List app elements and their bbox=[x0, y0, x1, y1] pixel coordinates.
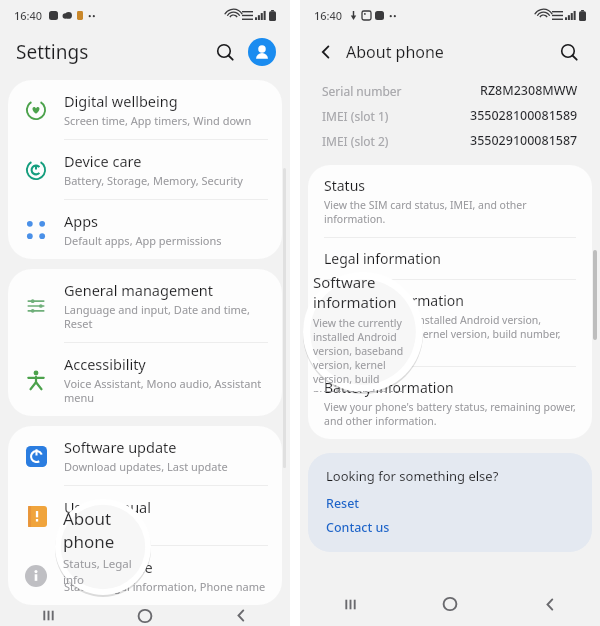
staticText: Serial number bbox=[322, 83, 402, 99]
button[interactable]: Reset bbox=[326, 495, 360, 512]
button[interactable]: Digital wellbeing bbox=[8, 80, 282, 139]
staticText: Screen time, App timers, Wind down bbox=[64, 113, 252, 128]
staticText: View the SIM card status, IMEI, and othe… bbox=[324, 198, 578, 226]
button[interactable]: About phone bbox=[8, 546, 282, 605]
staticText: About phone bbox=[64, 557, 153, 577]
staticText: Software information bbox=[313, 272, 413, 312]
button[interactable]: General management bbox=[8, 269, 282, 342]
staticText: Accessibility bbox=[64, 354, 146, 374]
staticText: Contact us bbox=[326, 519, 390, 536]
other: Search bbox=[216, 43, 235, 62]
button[interactable]: Recents bbox=[0, 605, 96, 626]
button[interactable]: Accessibility bbox=[8, 343, 282, 416]
staticText: View the currently installed Android ver… bbox=[313, 316, 413, 392]
button[interactable]: Home bbox=[96, 605, 193, 626]
button[interactable]: Search bbox=[208, 35, 242, 69]
staticText: Reset bbox=[326, 495, 360, 512]
staticText: Status, Legal info bbox=[63, 556, 143, 588]
button[interactable]: Battery information bbox=[308, 367, 592, 439]
staticText: General management bbox=[64, 280, 214, 300]
staticText: 355029100081587 bbox=[470, 132, 578, 149]
staticText: Voice Assistant, Mono audio, Assistant m… bbox=[64, 376, 268, 405]
staticText: Device care bbox=[64, 151, 142, 171]
staticText: Language and input, Date and time, Reset bbox=[64, 302, 268, 331]
button[interactable]: Home bbox=[400, 582, 500, 626]
other: Search bbox=[560, 43, 579, 62]
button[interactable]: Software information bbox=[308, 280, 592, 366]
staticText: Digital wellbeing bbox=[64, 91, 178, 111]
staticText: Software update bbox=[64, 437, 177, 457]
staticText: User manual bbox=[64, 519, 130, 534]
button[interactable]: Back bbox=[193, 605, 290, 626]
button[interactable]: Status bbox=[308, 165, 592, 237]
button[interactable]: Legal information bbox=[308, 238, 592, 279]
staticText: About phone bbox=[346, 41, 444, 63]
staticText: Looking for something else? bbox=[326, 467, 499, 485]
staticText: 16:40 bbox=[14, 8, 43, 23]
staticText: Software information bbox=[324, 291, 464, 310]
button[interactable]: Navigate up bbox=[310, 36, 342, 68]
staticText: RZ8M2308MWW bbox=[480, 82, 578, 99]
staticText: 16:40 bbox=[314, 8, 343, 23]
button[interactable]: Account bbox=[248, 38, 276, 66]
staticText: Default apps, App permissions bbox=[64, 233, 222, 248]
staticText: Status bbox=[324, 176, 366, 195]
staticText: Download updates, Last update bbox=[64, 459, 228, 474]
staticText: Battery, Storage, Memory, Security bbox=[64, 173, 243, 188]
staticText: User manual bbox=[64, 497, 151, 517]
staticText: Battery information bbox=[324, 378, 454, 397]
button[interactable]: User manual bbox=[8, 486, 282, 545]
button[interactable]: Apps bbox=[8, 200, 282, 259]
staticText: View your phone's battery status, remain… bbox=[324, 400, 578, 428]
staticText: IMEI (slot 2) bbox=[322, 133, 389, 149]
staticText: Legal information bbox=[324, 249, 442, 268]
button[interactable]: Software update bbox=[8, 426, 282, 485]
staticText: Settings bbox=[16, 39, 89, 65]
staticText: Apps bbox=[64, 211, 99, 231]
button[interactable]: Back bbox=[500, 582, 600, 626]
button[interactable]: Search bbox=[552, 35, 586, 69]
staticText: IMEI (slot 1) bbox=[322, 108, 389, 124]
staticText: About phone bbox=[63, 507, 143, 553]
staticText: Status, Legal information, Phone name bbox=[64, 579, 266, 594]
button[interactable]: Device care bbox=[8, 140, 282, 199]
staticText: View the currently installed Android ver… bbox=[324, 313, 578, 355]
button[interactable]: Recents bbox=[300, 582, 400, 626]
staticText: 355028100081589 bbox=[470, 107, 578, 124]
button[interactable]: Contact us bbox=[326, 519, 390, 536]
